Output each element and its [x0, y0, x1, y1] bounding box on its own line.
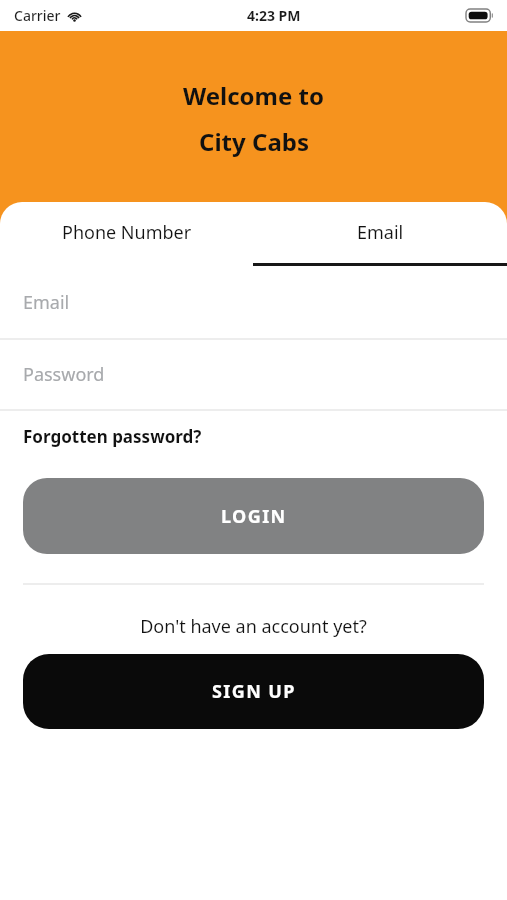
- staticText: Don't have an account yet?: [0, 614, 507, 639]
- staticText: Phone Number: [62, 220, 192, 245]
- staticText: 4:23 PM: [247, 6, 301, 25]
- staticText: Carrier: [14, 6, 61, 25]
- button[interactable]: Email: [0, 266, 507, 338]
- staticText: Password: [23, 362, 105, 387]
- button[interactable]: Email: [253, 202, 507, 263]
- button[interactable]: Password: [0, 340, 507, 409]
- button[interactable]: LOGIN: [23, 478, 484, 554]
- button[interactable]: Phone Number: [0, 202, 253, 263]
- staticText: Welcome to: [183, 79, 324, 112]
- button[interactable]: SIGN UP: [23, 654, 484, 729]
- staticText: City Cabs: [199, 125, 309, 158]
- staticText: LOGIN: [221, 504, 287, 529]
- staticText: Forgotten password?: [23, 425, 202, 448]
- staticText: Email: [23, 290, 70, 315]
- staticText: Email: [357, 220, 404, 245]
- button[interactable]: Forgotten password?: [0, 411, 507, 461]
- staticText: SIGN UP: [212, 679, 296, 704]
